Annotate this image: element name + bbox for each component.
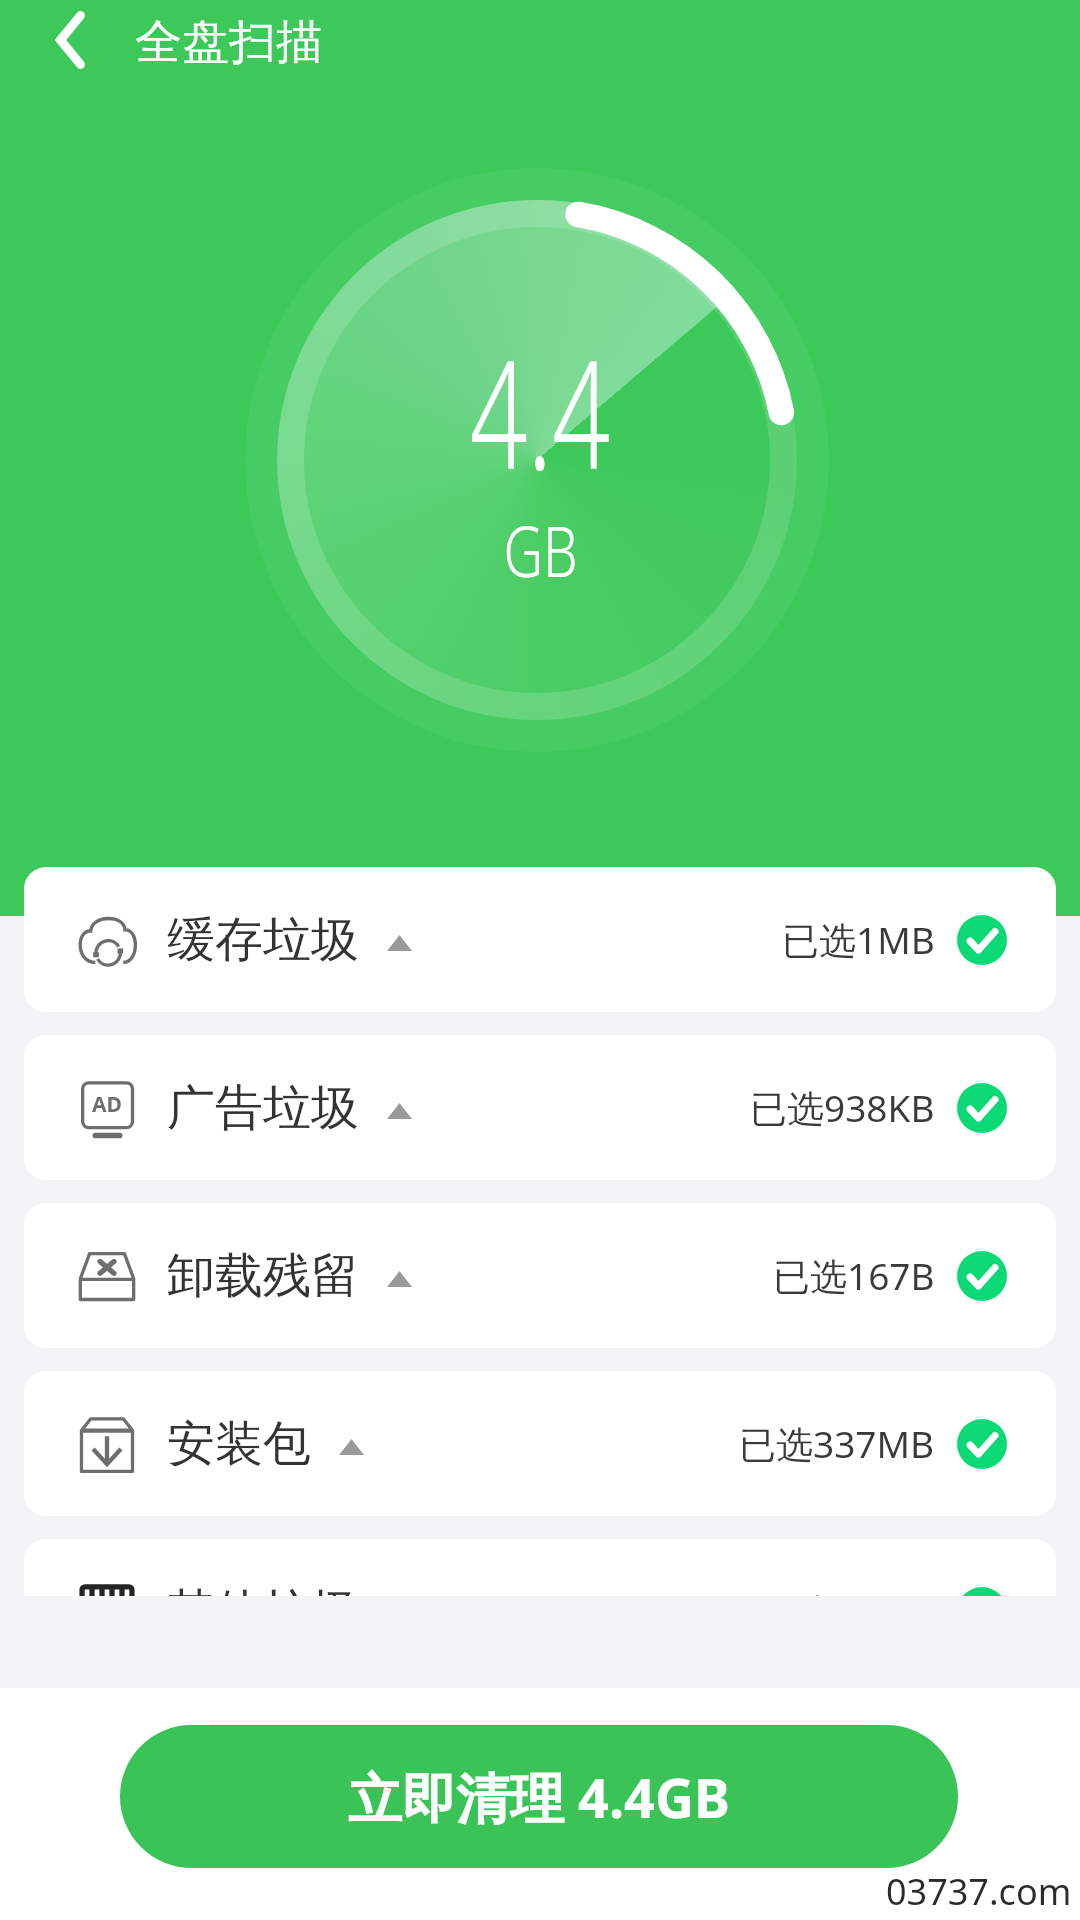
staticText: 4.4 bbox=[470, 309, 610, 513]
staticText: 缓存垃圾 bbox=[167, 910, 359, 970]
button[interactable]: 立即清理 4.4GB bbox=[120, 1725, 958, 1868]
staticText: 已选1MB bbox=[782, 914, 935, 965]
button[interactable]: AD bbox=[24, 1035, 1056, 1180]
staticText: 已选167B bbox=[773, 1250, 935, 1301]
staticText: 立即清理 4.4GB bbox=[348, 1760, 730, 1834]
button[interactable]: 缓存垃圾 bbox=[24, 867, 1056, 1012]
staticText: 卸载残留 bbox=[167, 1246, 359, 1306]
staticText: 03737.com bbox=[886, 1867, 1072, 1916]
staticText: 安装包 bbox=[167, 1414, 311, 1474]
button[interactable]: 卸载残留 bbox=[24, 1203, 1056, 1348]
button[interactable]: 其他垃圾 bbox=[24, 1539, 1056, 1684]
staticText: 其他垃圾 bbox=[167, 1582, 359, 1642]
staticText: AD bbox=[92, 1090, 122, 1119]
button[interactable]: Back bbox=[20, 0, 120, 80]
staticText: 全盘扫描 bbox=[135, 13, 323, 72]
staticText: 广告垃圾 bbox=[167, 1078, 359, 1138]
button[interactable]: 安装包 bbox=[24, 1371, 1056, 1516]
staticText: 已选938KB bbox=[750, 1082, 935, 1133]
staticText: GB bbox=[503, 502, 578, 597]
staticText: 已选337MB bbox=[739, 1418, 935, 1469]
staticText: 已选1.2GB bbox=[757, 1586, 935, 1637]
